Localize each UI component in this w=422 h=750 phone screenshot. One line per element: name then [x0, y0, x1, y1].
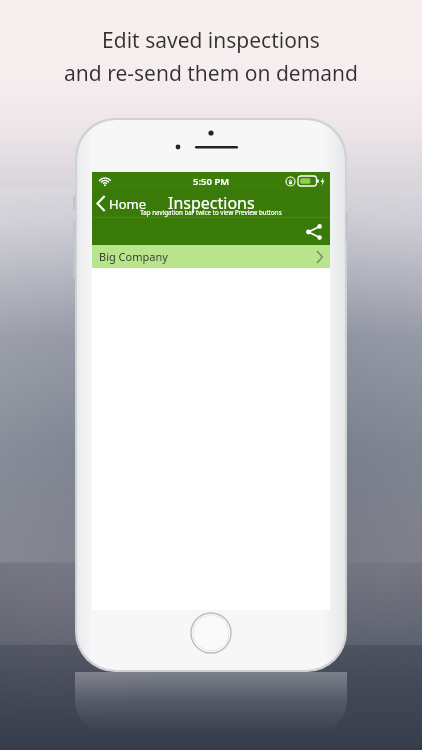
button[interactable]: Share [304, 222, 324, 242]
staticText: Home [109, 195, 146, 213]
button[interactable]: Home [92, 190, 154, 217]
button[interactable]: Big Company [92, 245, 330, 268]
staticText: Big Company [99, 249, 168, 264]
staticText: Inspections [168, 192, 255, 214]
staticText: 5:50 PM [193, 175, 230, 188]
staticText: Tap navigation bar twice to view Preview… [140, 208, 282, 216]
staticText: Edit saved inspections [102, 26, 320, 55]
staticText: and re-send them on demand [64, 59, 358, 88]
